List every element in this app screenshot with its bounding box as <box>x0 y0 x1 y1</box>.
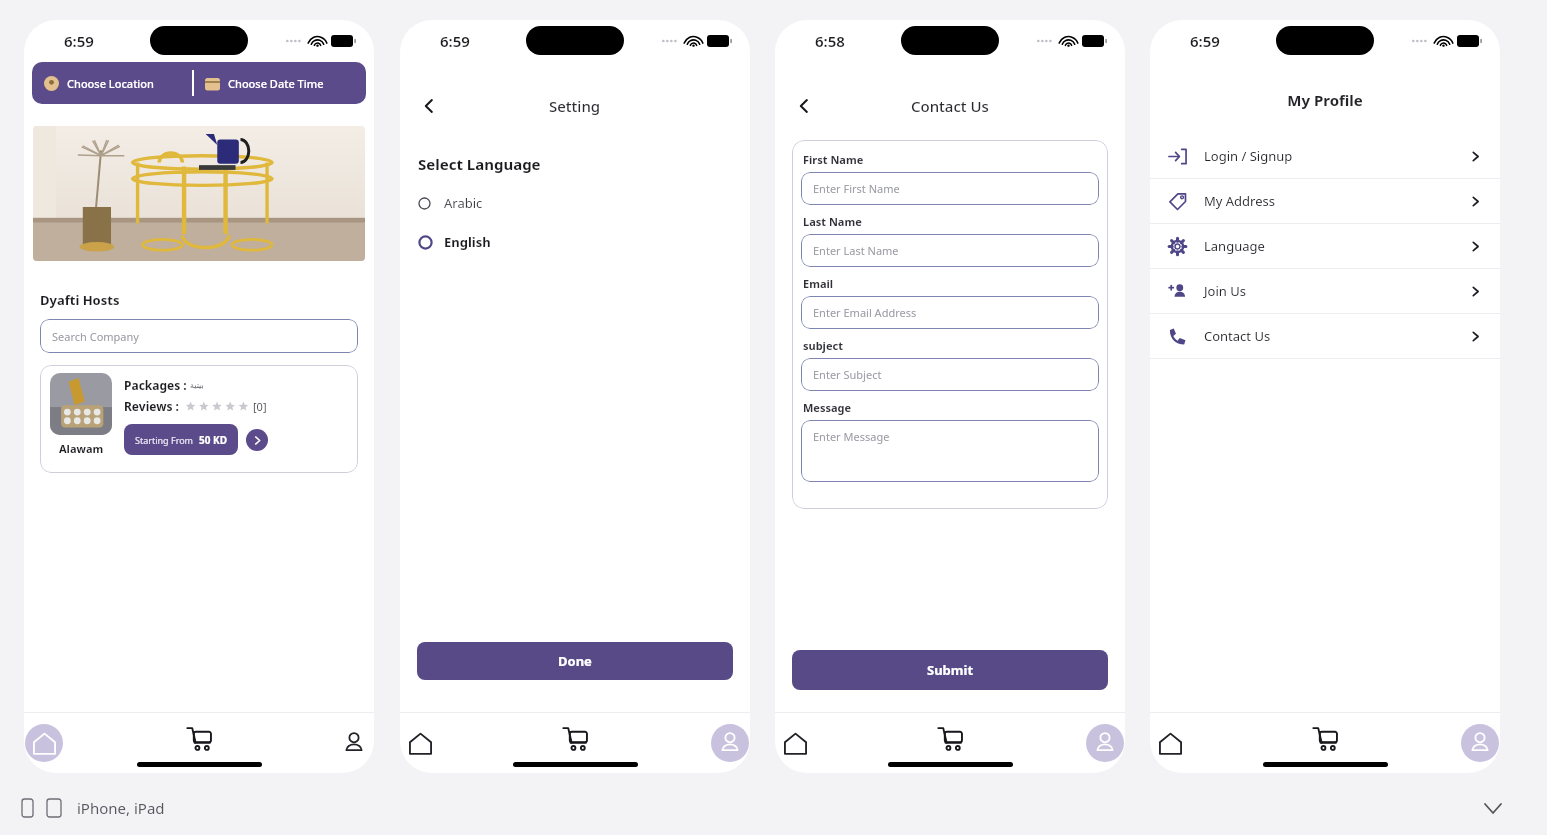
staticText: Starting From <box>135 434 194 446</box>
button[interactable]: Cart <box>140 713 257 773</box>
button[interactable]: Enter Last Name <box>801 234 1099 267</box>
staticText: Enter Last Name <box>813 243 899 258</box>
staticText: Search Company <box>52 329 139 344</box>
button[interactable]: Open package <box>246 429 268 451</box>
staticText: 6:59 <box>440 31 470 51</box>
button[interactable]: Back <box>412 89 446 123</box>
staticText: Packages : <box>124 377 187 393</box>
button[interactable]: English <box>400 229 750 255</box>
button[interactable]: Cart <box>1266 713 1383 773</box>
button[interactable]: Collapse <box>1479 794 1507 822</box>
staticText: Enter Subject <box>813 367 882 382</box>
staticText: Submit <box>927 661 974 679</box>
staticText: Enter Email Address <box>813 305 917 320</box>
button[interactable]: Starting From <box>124 424 238 455</box>
staticText: English <box>444 233 491 251</box>
staticText: Enter First Name <box>813 181 900 196</box>
button[interactable]: Profile <box>257 713 374 773</box>
staticText: Reviews : <box>124 398 179 414</box>
button[interactable]: Arabic <box>400 190 750 216</box>
staticText: [0] <box>253 399 267 414</box>
button[interactable]: Enter Email Address <box>801 296 1099 329</box>
button[interactable]: Search Company <box>40 319 358 353</box>
button[interactable]: Language <box>1150 224 1500 268</box>
staticText: My Address <box>1204 192 1275 210</box>
button[interactable]: Profile <box>1383 713 1500 773</box>
staticText: Message <box>803 400 852 415</box>
staticText: Email <box>803 276 834 291</box>
staticText: Setting <box>549 96 601 116</box>
staticText: 6:58 <box>815 31 845 51</box>
staticText: 50 KD <box>199 433 227 447</box>
staticText: 6:59 <box>64 31 94 51</box>
button[interactable]: Cart <box>516 713 633 773</box>
button[interactable]: Submit <box>792 650 1108 690</box>
staticText: Arabic <box>444 194 483 212</box>
button[interactable]: My Address <box>1150 179 1500 223</box>
staticText: Choose Location <box>67 76 154 91</box>
button[interactable]: Profile <box>633 713 750 773</box>
staticText: My Profile <box>1150 90 1500 110</box>
button[interactable]: Home <box>400 713 516 773</box>
button[interactable]: Profile <box>1008 713 1125 773</box>
staticText: Dyafti Hosts <box>40 291 120 309</box>
staticText: Select Language <box>418 154 541 174</box>
staticText: First Name <box>803 152 864 167</box>
button[interactable]: Done <box>417 642 733 680</box>
button[interactable]: Enter First Name <box>801 172 1099 205</box>
button[interactable]: Choose Location <box>32 62 366 104</box>
staticText: Enter Message <box>813 429 890 444</box>
staticText: Language <box>1204 237 1265 255</box>
staticText: Last Name <box>803 214 862 229</box>
button[interactable]: Enter Message <box>801 420 1099 482</box>
staticText: Contact Us <box>911 96 989 116</box>
button[interactable]: Back <box>787 89 821 123</box>
button[interactable]: Home <box>775 713 891 773</box>
button[interactable]: Alawam <box>40 365 358 473</box>
staticText: Alawam <box>59 441 104 456</box>
staticText: Contact Us <box>1204 327 1271 345</box>
staticText: Login / Signup <box>1204 147 1293 165</box>
staticText: Join Us <box>1204 282 1246 300</box>
staticText: Done <box>558 652 592 670</box>
button[interactable] <box>33 126 365 261</box>
staticText: Choose Date Time <box>228 76 324 91</box>
staticText: 6:59 <box>1190 31 1220 51</box>
button[interactable]: Home <box>24 713 140 773</box>
staticText: iPhone, iPad <box>77 798 165 818</box>
staticText: بيتية <box>190 381 204 390</box>
button[interactable]: Cart <box>891 713 1008 773</box>
button[interactable]: Enter Subject <box>801 358 1099 391</box>
staticText: subject <box>803 338 843 353</box>
button[interactable]: Contact Us <box>1150 314 1500 358</box>
button[interactable]: Home <box>1150 713 1266 773</box>
button[interactable]: Login / Signup <box>1150 134 1500 178</box>
button[interactable]: Join Us <box>1150 269 1500 313</box>
